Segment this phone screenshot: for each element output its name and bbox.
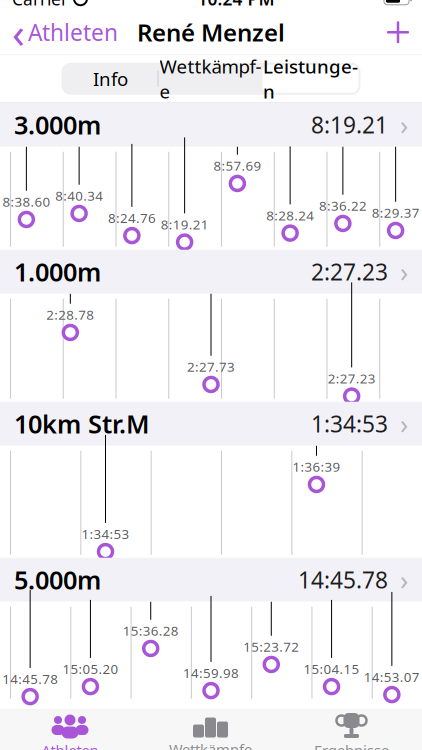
- staticText: ‹: [12, 5, 25, 60]
- staticText: 2:27.73: [187, 358, 235, 375]
- staticText: 8:24.76: [108, 209, 156, 227]
- staticText: Wettkämpfe: [169, 739, 252, 750]
- button[interactable]: 10km Str.M: [0, 402, 422, 446]
- staticText: 1:34:53: [311, 409, 388, 439]
- staticText: ›: [400, 254, 408, 289]
- staticText: ›: [400, 562, 408, 597]
- staticText: 5.000m: [14, 563, 101, 596]
- staticText: 8:28.24: [266, 206, 314, 224]
- staticText: 8:38.60: [2, 193, 50, 210]
- button[interactable]: Ergebnisse: [281, 711, 422, 750]
- staticText: ›: [400, 406, 408, 441]
- button[interactable]: Info: [63, 65, 157, 93]
- staticText: Ergebnisse: [314, 740, 389, 750]
- staticText: 8:36.22: [319, 197, 367, 214]
- staticText: 8:40.34: [55, 187, 103, 204]
- button[interactable]: Hinzufügen: [374, 10, 422, 54]
- staticText: ›: [400, 107, 408, 142]
- button[interactable]: 3.000m: [0, 103, 422, 147]
- staticText: 8:57.69: [213, 157, 261, 174]
- staticText: 10km Str.M: [14, 407, 150, 440]
- staticText: Wettkämpfe: [159, 54, 261, 104]
- staticText: 15:36.28: [123, 622, 179, 639]
- button[interactable]: Leistungen: [262, 65, 358, 93]
- staticText: René Menzel: [137, 16, 285, 48]
- button[interactable]: Wettkämpfe: [158, 65, 262, 93]
- staticText: 2:27.23: [328, 369, 376, 387]
- staticText: 1:36:39: [292, 458, 340, 475]
- button[interactable]: 5.000m: [0, 558, 422, 602]
- button[interactable]: Wettkämpfe: [140, 711, 281, 750]
- staticText: 1:34:53: [81, 525, 129, 543]
- staticText: 3.000m: [14, 108, 101, 141]
- staticText: 15:04.15: [304, 660, 360, 678]
- staticText: 1.000m: [14, 255, 101, 288]
- staticText: 14:45.78: [298, 565, 388, 595]
- staticText: 14:59.98: [183, 664, 239, 682]
- button[interactable]: 1.000m: [0, 250, 422, 294]
- staticText: 8:29.37: [372, 204, 420, 221]
- button[interactable]: Athleten: [0, 711, 140, 750]
- staticText: 15:23.72: [243, 638, 299, 655]
- staticText: Leistungen: [263, 54, 358, 104]
- staticText: 2:27.23: [311, 257, 388, 287]
- button[interactable]: ‹: [0, 10, 126, 54]
- staticText: Athleten: [41, 740, 98, 750]
- staticText: 2:28.78: [46, 306, 94, 323]
- staticText: 8:19.21: [161, 215, 209, 233]
- staticText: Carrier: [12, 0, 68, 10]
- staticText: 15:05.20: [62, 660, 118, 678]
- staticText: Info: [93, 66, 128, 91]
- staticText: Athleten: [28, 17, 118, 47]
- staticText: 14:45.78: [2, 670, 58, 688]
- staticText: 10:24 PM: [197, 0, 274, 10]
- staticText: 8:19.21: [311, 110, 388, 140]
- staticText: 14:53.07: [364, 668, 420, 686]
